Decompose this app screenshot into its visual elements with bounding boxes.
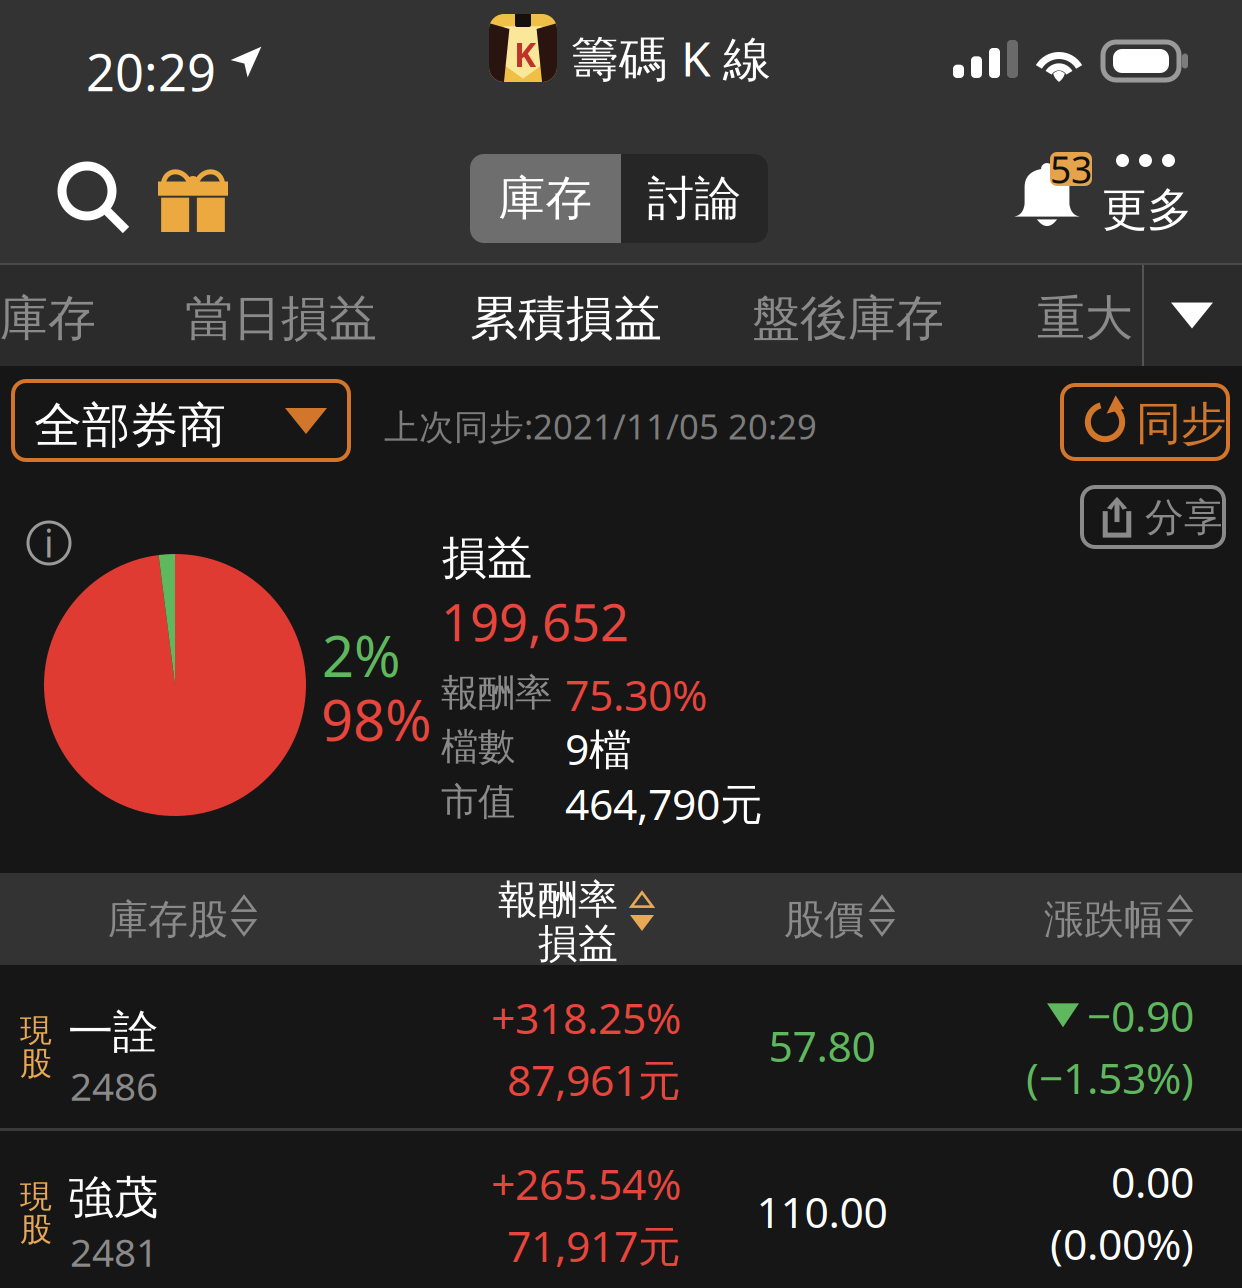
button[interactable]: 全部券商	[13, 381, 349, 460]
staticText: 87,961元	[507, 1051, 681, 1108]
button[interactable]: 現	[0, 965, 1242, 1128]
staticText: 檔數	[441, 724, 515, 770]
staticText: 更多	[1102, 182, 1192, 238]
staticText: 損益	[538, 919, 618, 968]
button[interactable]: 漲跌幅	[1044, 873, 1230, 965]
staticText: 199,652	[441, 588, 629, 655]
staticText: 75.30%	[565, 666, 707, 723]
staticText: 市值	[441, 779, 515, 825]
staticText: 分享	[1145, 494, 1223, 541]
staticText: 股價	[784, 895, 864, 944]
button[interactable]: Gifts	[140, 148, 246, 250]
staticText: 盤後庫存	[752, 289, 944, 348]
button[interactable]: Notifications	[1008, 132, 1102, 242]
staticText: 上次同步:2021/11/05 20:29	[384, 403, 817, 449]
staticText: +265.54%	[491, 1155, 681, 1212]
staticText: 損益	[442, 530, 532, 586]
staticText: 20:29	[86, 38, 216, 105]
staticText: 報酬率	[441, 670, 552, 716]
button[interactable]: 討論	[621, 154, 768, 243]
staticText: 同步	[1136, 396, 1226, 452]
staticText: 股	[20, 1044, 52, 1083]
staticText: 0.00	[1111, 1153, 1194, 1210]
button[interactable]: More	[1104, 132, 1200, 242]
staticText: 漲跌幅	[1044, 895, 1164, 944]
staticText: 累積損益	[470, 289, 662, 348]
staticText: 現	[20, 1177, 52, 1216]
staticText: 57.80	[768, 1017, 875, 1074]
staticText: 2486	[70, 1060, 158, 1111]
button[interactable]: 庫存股	[108, 873, 288, 965]
staticText: 2%	[322, 618, 401, 692]
staticText: 2481	[70, 1226, 158, 1277]
staticText: 464,790元	[565, 775, 763, 832]
button[interactable]: Info	[17, 511, 81, 575]
staticText: 71,917元	[507, 1217, 681, 1274]
staticText: −0.90	[1087, 987, 1194, 1044]
staticText: i	[44, 518, 54, 568]
staticText: 討論	[647, 170, 741, 227]
button[interactable]: 同步	[1062, 385, 1228, 459]
button[interactable]: Share	[1082, 487, 1224, 547]
staticText: +318.25%	[491, 989, 681, 1046]
staticText: 現	[20, 1011, 52, 1050]
staticText: 9檔	[565, 720, 632, 777]
staticText: 53	[1050, 144, 1092, 194]
button[interactable]: 報酬率	[498, 873, 748, 965]
button[interactable]: Show all tabs	[1142, 265, 1242, 366]
staticText: 庫存	[498, 170, 592, 227]
staticText: 庫存股	[108, 895, 228, 944]
staticText: 庫存	[0, 289, 96, 348]
staticText: 股	[20, 1210, 52, 1249]
staticText: 籌碼 K 線	[571, 26, 771, 90]
button[interactable]: 股價	[784, 873, 934, 965]
staticText: 全部券商	[34, 396, 226, 455]
staticText: K	[514, 32, 536, 76]
staticText: 重大	[1037, 289, 1133, 348]
button[interactable]: 現	[0, 1131, 1242, 1288]
button[interactable]: Search	[44, 148, 146, 250]
staticText: 當日損益	[185, 289, 377, 348]
staticText: 一詮	[68, 1004, 158, 1060]
staticText: 強茂	[68, 1170, 158, 1226]
staticText: 報酬率	[498, 875, 618, 924]
staticText: 110.00	[756, 1183, 887, 1240]
button[interactable]: 庫存	[470, 154, 621, 243]
staticText: 98%	[321, 682, 432, 756]
staticText: (−1.53%)	[1026, 1049, 1194, 1106]
staticText: (0.00%)	[1050, 1215, 1194, 1272]
